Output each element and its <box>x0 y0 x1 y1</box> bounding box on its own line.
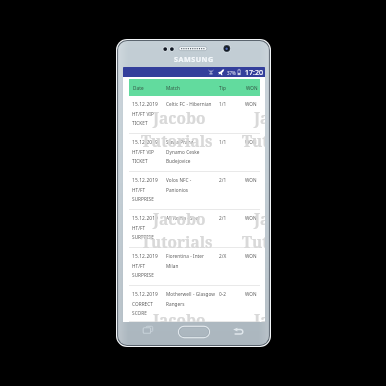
staticText: 15.12.2019 <box>132 215 159 222</box>
staticText: TICKET <box>132 120 148 126</box>
staticText: Jacobo <box>153 310 206 322</box>
staticText: Celtic FC - Hibernian <box>166 101 212 107</box>
staticText: 37% <box>227 70 236 76</box>
staticText: Volos NFC - <box>166 177 192 183</box>
staticText: 2/1 <box>219 215 227 221</box>
button[interactable]: 15.12.2019 <box>123 134 265 172</box>
staticText: Dynamo Ceske Budejovice <box>166 149 200 164</box>
staticText: WON <box>245 215 257 221</box>
staticText: Jacobo <box>254 108 265 129</box>
button[interactable]: 15.12.2019 <box>123 248 265 286</box>
staticText: SURPRISE <box>132 196 154 202</box>
staticText: WON <box>246 85 258 91</box>
staticText: 15.12.2019 <box>132 139 159 146</box>
staticText: 2/X <box>219 253 227 259</box>
staticText: 1/1 <box>219 101 227 107</box>
staticText: HT/FT <box>132 187 146 193</box>
staticText: SCORE <box>132 310 147 316</box>
staticText: Tip <box>219 85 226 91</box>
staticText: AS Roma - Spal <box>166 215 200 221</box>
staticText: Panionios <box>166 187 189 193</box>
staticText: Rangers <box>166 301 185 307</box>
staticText: Tutorials <box>242 232 265 253</box>
staticText: HT/FT <box>132 225 146 231</box>
button[interactable]: Home <box>178 326 210 338</box>
staticText: SAMSUNG <box>174 54 214 64</box>
staticText: 2/1 <box>219 177 227 183</box>
staticText: Motherwell - Glasgow <box>166 291 215 297</box>
button[interactable]: Recent apps <box>142 325 156 337</box>
staticText: WON <box>245 291 257 297</box>
staticText: WON <box>245 139 257 145</box>
button[interactable]: 15.12.2019 <box>123 210 265 248</box>
staticText: Milan <box>166 263 179 269</box>
staticText: TICKET <box>132 158 148 164</box>
staticText: 17:20 <box>245 68 263 78</box>
staticText: 1/1 <box>219 139 227 145</box>
staticText: SURPRISE <box>132 272 154 278</box>
staticText: CORRECT <box>132 301 153 307</box>
staticText: Jacobo <box>153 108 206 129</box>
staticText: Slavia Praha <box>166 139 194 145</box>
staticText: 15.12.2019 <box>132 101 159 108</box>
staticText: WON <box>245 253 257 259</box>
staticText: Tutorials <box>141 232 213 253</box>
staticText: HT/FT VIP <box>132 111 154 117</box>
staticText: 15.12.2019 <box>132 177 159 184</box>
staticText: Jacobo <box>153 209 206 230</box>
staticText: WON <box>245 177 257 183</box>
button[interactable]: Back <box>233 327 245 337</box>
button[interactable]: 15.12.2019 <box>123 286 265 322</box>
button[interactable]: 15.12.2019 <box>123 96 265 134</box>
staticText: Tutorials <box>141 131 213 152</box>
button[interactable]: Date <box>129 79 260 96</box>
staticText: Match <box>166 85 181 91</box>
staticText: Date <box>133 85 144 91</box>
staticText: SURPRISE <box>132 234 154 240</box>
staticText: HT/FT <box>132 263 146 269</box>
staticText: Tutorials <box>242 131 265 152</box>
staticText: HT/FT VIP <box>132 149 154 155</box>
staticText: 0-2 <box>219 291 227 297</box>
staticText: Jacobo <box>254 310 265 322</box>
staticText: 15.12.2019 <box>132 291 159 298</box>
staticText: Jacobo <box>254 209 265 230</box>
staticText: WON <box>245 101 257 107</box>
staticText: 15.12.2019 <box>132 253 159 260</box>
button[interactable]: 15.12.2019 <box>123 172 265 210</box>
staticText: Fiorentina - Inter <box>166 253 205 259</box>
